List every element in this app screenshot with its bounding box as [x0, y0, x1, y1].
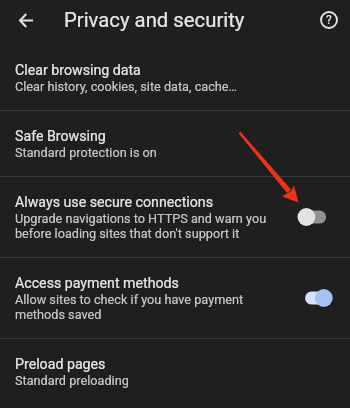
staticText: ? — [326, 13, 332, 27]
staticText: Upgrade navigations to HTTPS and warn yo… — [15, 211, 281, 241]
button[interactable]: Help — [314, 5, 344, 35]
staticText: Preload pages — [15, 356, 106, 373]
button[interactable]: Safe Browsing — [0, 111, 350, 176]
staticText: Allow sites to check if you have payment… — [15, 292, 281, 322]
button[interactable]: Toggle off — [296, 204, 331, 230]
staticText: Clear browsing data — [15, 62, 141, 79]
button[interactable]: Preload pages — [0, 339, 350, 404]
button[interactable]: Access payment methods — [0, 258, 350, 338]
staticText: Privacy and security — [64, 8, 245, 32]
staticText: Standard protection is on — [15, 145, 157, 160]
staticText: Always use secure connections — [15, 194, 214, 211]
staticText: Access payment methods — [15, 275, 179, 292]
staticText: Standard preloading — [15, 373, 129, 388]
button[interactable]: Back — [9, 3, 43, 37]
staticText: Safe Browsing — [15, 128, 106, 145]
button[interactable]: Always use secure connections — [0, 177, 350, 257]
button[interactable]: Clear browsing data — [0, 45, 350, 110]
staticText: Clear history, cookies, site data, cache… — [15, 79, 238, 94]
button[interactable]: Toggle on — [296, 285, 331, 311]
